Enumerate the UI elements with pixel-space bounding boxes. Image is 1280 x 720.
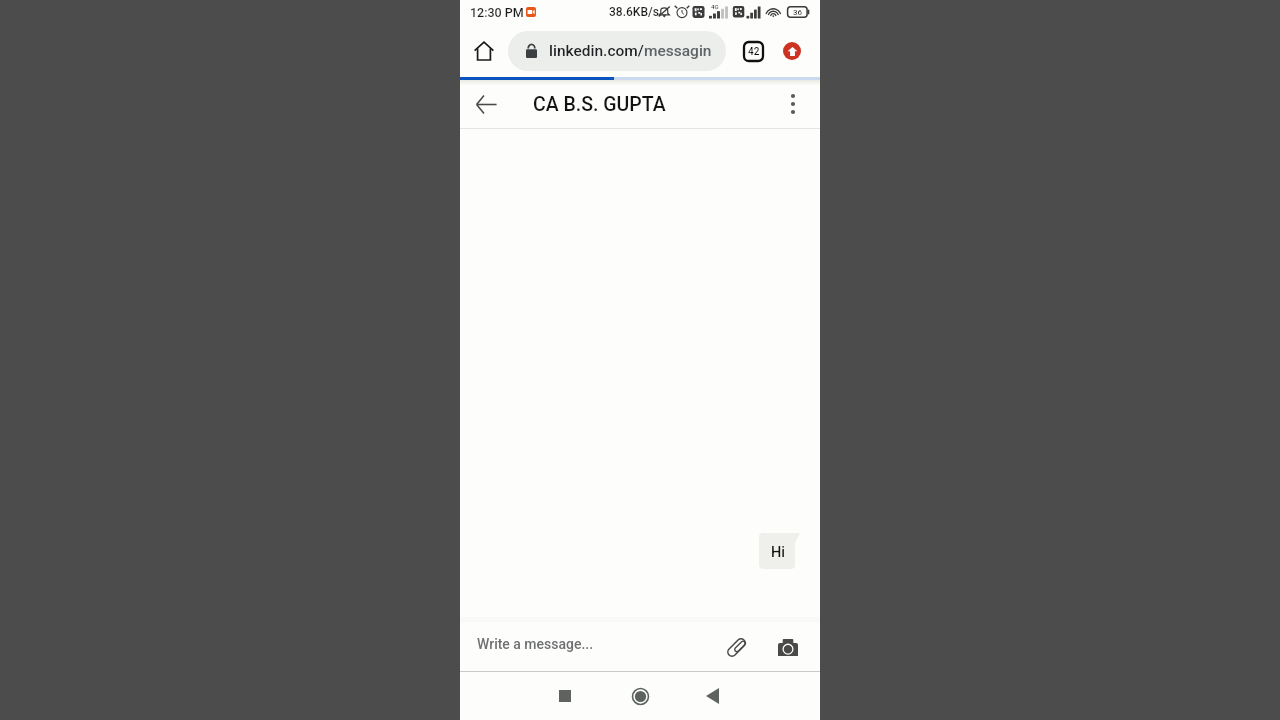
button[interactable]: Camera <box>772 631 804 663</box>
staticText: 12:30 PM <box>470 5 524 20</box>
button[interactable]: Recent apps <box>547 678 583 714</box>
button[interactable]: More options <box>778 89 808 119</box>
button[interactable]: Home <box>472 39 496 63</box>
button[interactable]: Tabs <box>741 39 765 63</box>
staticText: Write a message... <box>477 636 594 652</box>
staticText: 36 <box>793 8 803 17</box>
button[interactable]: Back <box>472 90 500 118</box>
button[interactable]: Attach file <box>720 631 752 663</box>
staticText: 38.6KB/s <box>609 5 659 19</box>
staticText: messagin <box>644 42 712 60</box>
staticText: linkedin.com/ <box>549 42 644 60</box>
staticText: 4G <box>711 3 719 10</box>
staticText: 42 <box>748 46 760 58</box>
button[interactable]: Home <box>622 678 658 714</box>
button[interactable]: linkedin.com/ <box>508 31 726 71</box>
button[interactable]: Update <box>780 39 804 63</box>
staticText: CA B.S. GUPTA <box>533 93 666 116</box>
staticText: Hi <box>771 544 785 561</box>
button[interactable]: Back <box>694 678 730 714</box>
